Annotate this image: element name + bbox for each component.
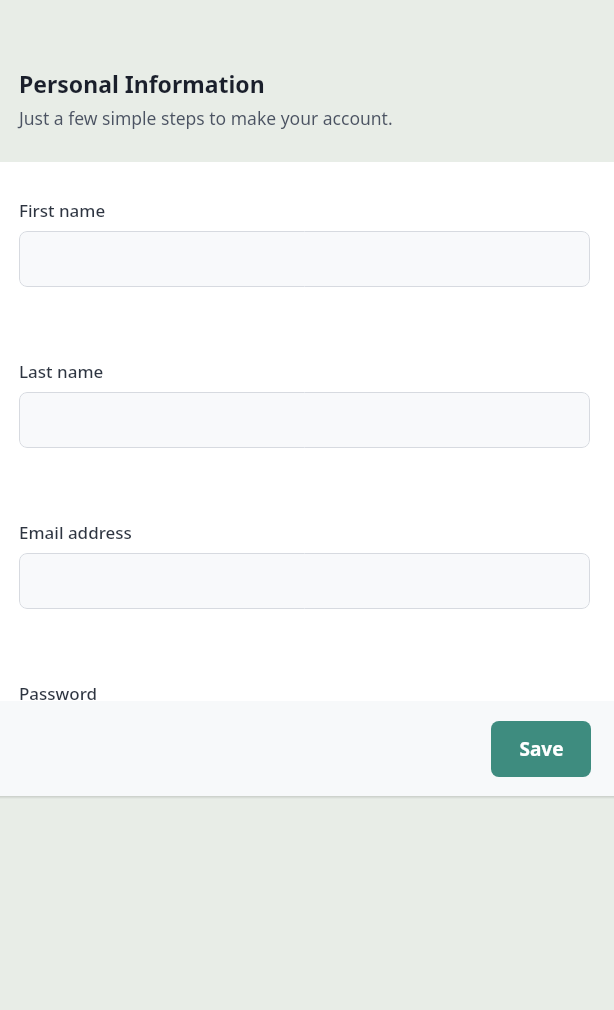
button[interactable]: Last name xyxy=(19,392,590,448)
staticText: First name xyxy=(19,199,106,222)
button[interactable]: First name xyxy=(19,231,590,287)
staticText: Just a few simple steps to make your acc… xyxy=(19,106,393,130)
button[interactable]: Email address xyxy=(19,553,590,609)
staticText: Save xyxy=(519,736,564,762)
staticText: Password xyxy=(19,682,98,701)
staticText: Email address xyxy=(19,521,132,544)
staticText: Last name xyxy=(19,360,104,383)
button[interactable]: Save xyxy=(491,721,591,777)
staticText: Personal Information xyxy=(19,68,265,99)
